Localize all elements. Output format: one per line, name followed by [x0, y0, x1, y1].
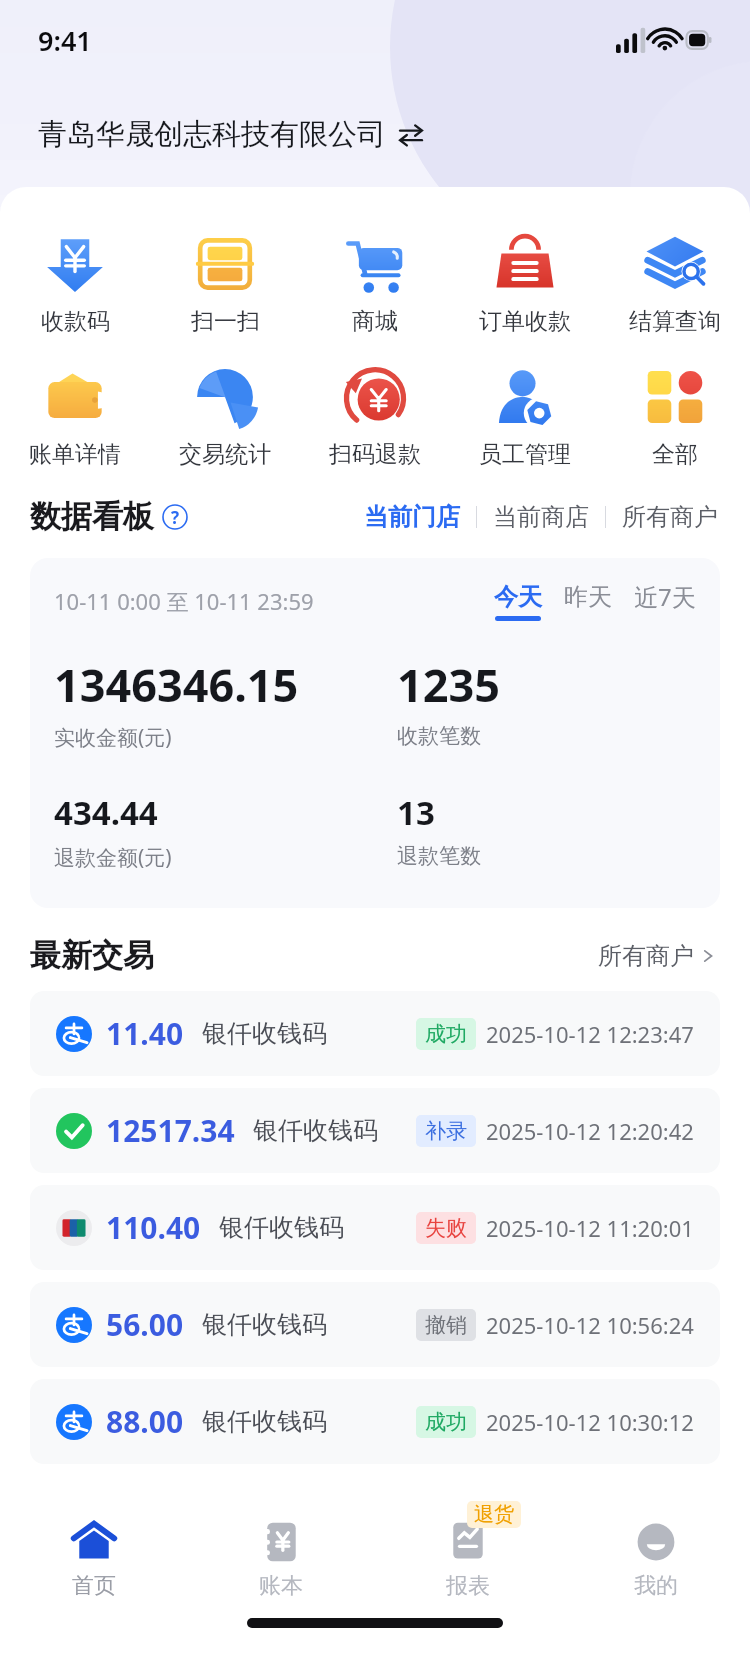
- staticText: 88.00: [106, 1401, 184, 1442]
- staticText: 所有商户: [598, 941, 694, 971]
- button[interactable]: 交易统计: [150, 360, 300, 475]
- button[interactable]: 青岛华晟创志科技有限公司: [38, 112, 424, 157]
- button[interactable]: 近7天: [634, 580, 696, 622]
- staticText: 退款笔数: [397, 843, 481, 869]
- staticText: 订单收款: [479, 307, 571, 336]
- staticText: 1346346.15: [54, 654, 299, 715]
- staticText: 434.44: [54, 790, 158, 835]
- button[interactable]: 首页: [0, 1500, 187, 1618]
- staticText: 110.40: [106, 1207, 201, 1248]
- button[interactable]: 全部: [600, 360, 750, 475]
- button[interactable]: 帮助: [162, 504, 188, 530]
- staticText: 成功: [425, 1409, 467, 1435]
- staticText: 银仟收钱码: [202, 1018, 327, 1049]
- button[interactable]: 今天: [494, 582, 542, 621]
- staticText: 收款码: [41, 307, 110, 336]
- staticText: 56.00: [106, 1304, 184, 1345]
- button[interactable]: 我的: [562, 1500, 750, 1618]
- staticText: 昨天: [564, 582, 612, 612]
- staticText: 12517.34: [106, 1110, 235, 1151]
- staticText: 9:41: [38, 22, 92, 59]
- staticText: 撤销: [425, 1312, 467, 1338]
- staticText: 成功: [425, 1021, 467, 1047]
- staticText: 全部: [652, 440, 698, 469]
- staticText: 2025-10-12 12:23:47: [486, 1019, 694, 1049]
- button[interactable]: 商城: [300, 227, 450, 342]
- staticText: 银仟收钱码: [253, 1115, 378, 1146]
- staticText: 10-11 0:00 至 10-11 23:59: [54, 586, 314, 616]
- staticText: 2025-10-12 12:20:42: [486, 1116, 694, 1146]
- staticText: 退货: [474, 1502, 514, 1527]
- staticText: 账单详情: [29, 440, 121, 469]
- button[interactable]: 88.00: [30, 1379, 720, 1464]
- staticText: 员工管理: [479, 440, 571, 469]
- button[interactable]: 当前商店: [491, 498, 591, 536]
- button[interactable]: 收款码: [0, 227, 150, 342]
- staticText: 1235: [397, 654, 500, 715]
- staticText: 扫码退款: [329, 440, 421, 469]
- staticText: 结算查询: [629, 307, 721, 336]
- staticText: 报表: [446, 1572, 490, 1600]
- staticText: 收款笔数: [397, 723, 481, 749]
- button[interactable]: 所有商户: [620, 498, 720, 536]
- staticText: 青岛华晟创志科技有限公司: [38, 116, 386, 153]
- button[interactable]: 12517.34: [30, 1088, 720, 1173]
- button[interactable]: 扫一扫: [150, 227, 300, 342]
- staticText: 11.40: [106, 1013, 184, 1054]
- staticText: 补录: [425, 1118, 467, 1144]
- button[interactable]: 当前门店: [362, 498, 462, 536]
- staticText: ?: [171, 506, 180, 529]
- staticText: 数据看板: [30, 497, 154, 536]
- staticText: 首页: [72, 1572, 116, 1600]
- staticText: 银仟收钱码: [202, 1406, 327, 1437]
- button[interactable]: 11.40: [30, 991, 720, 1076]
- staticText: 2025-10-12 10:30:12: [486, 1407, 694, 1437]
- staticText: 退款金额(元): [54, 843, 172, 872]
- staticText: 当前商店: [493, 502, 589, 532]
- button[interactable]: 订单收款: [450, 227, 600, 342]
- staticText: 银仟收钱码: [202, 1309, 327, 1340]
- button[interactable]: 退货: [374, 1500, 562, 1618]
- staticText: 13: [397, 790, 435, 835]
- staticText: 2025-10-12 10:56:24: [486, 1310, 694, 1340]
- staticText: 银仟收钱码: [219, 1212, 344, 1243]
- button[interactable]: 结算查询: [600, 227, 750, 342]
- button[interactable]: 昨天: [564, 582, 612, 621]
- button[interactable]: 56.00: [30, 1282, 720, 1367]
- staticText: 当前门店: [364, 502, 460, 532]
- button[interactable]: 账本: [187, 1500, 374, 1618]
- button[interactable]: 所有商户: [594, 937, 720, 975]
- staticText: 最新交易: [30, 936, 154, 975]
- staticText: 失败: [425, 1215, 467, 1241]
- staticText: 所有商户: [622, 502, 718, 532]
- button[interactable]: 账单详情: [0, 360, 150, 475]
- button[interactable]: 扫码退款: [300, 360, 450, 475]
- staticText: 扫一扫: [191, 307, 260, 336]
- staticText: 今天: [494, 582, 542, 612]
- staticText: 我的: [634, 1572, 678, 1600]
- staticText: 2025-10-12 11:20:01: [486, 1213, 694, 1243]
- staticText: 交易统计: [179, 440, 271, 469]
- staticText: 账本: [259, 1572, 303, 1600]
- staticText: 实收金额(元): [54, 723, 172, 752]
- button[interactable]: 110.40: [30, 1185, 720, 1270]
- button[interactable]: 员工管理: [450, 360, 600, 475]
- staticText: 商城: [352, 307, 398, 336]
- staticText: 近7天: [634, 580, 696, 613]
